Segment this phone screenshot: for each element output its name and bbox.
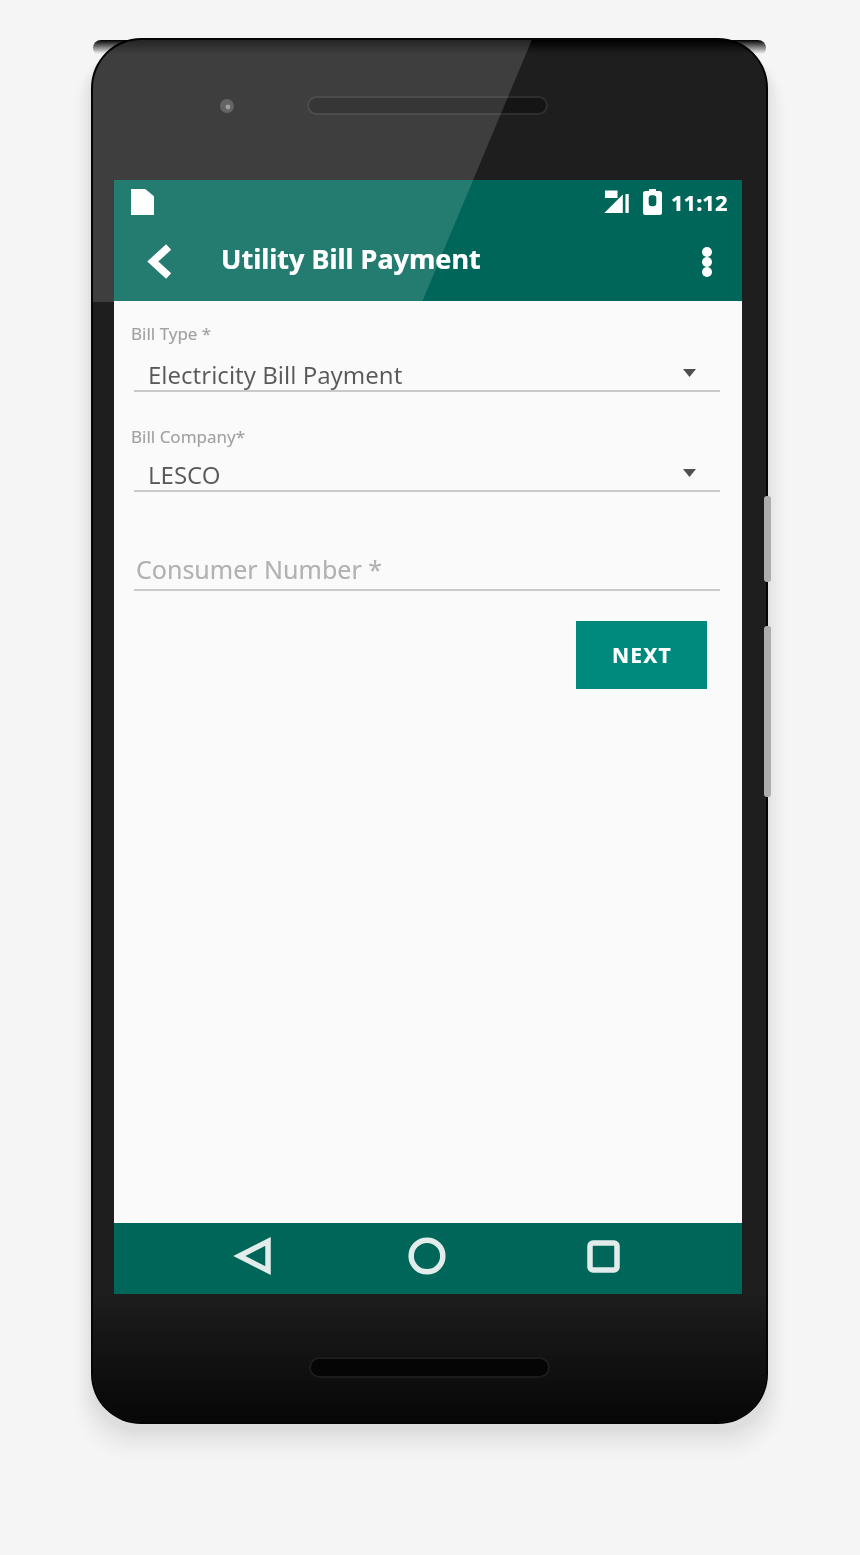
staticText: NEXT [612,641,672,670]
button[interactable]: NEXT [576,621,707,689]
staticText: 11:12 [671,187,728,217]
staticText: Electricity Bill Payment [148,358,403,391]
staticText: LESCO [148,458,221,491]
staticText: Bill Company* [131,425,246,448]
button[interactable]: Recent apps [573,1223,633,1283]
button[interactable]: More options [679,235,735,291]
button[interactable]: Home [397,1223,457,1283]
button[interactable]: Back [223,1223,283,1283]
button[interactable]: Bill Company [134,458,720,492]
staticText: Bill Type * [131,322,212,345]
staticText: Consumer Number * [136,552,383,586]
button[interactable]: Back [129,232,191,294]
staticText: Utility Bill Payment [221,240,481,277]
button[interactable]: Consumer Number [134,552,720,591]
button[interactable]: Bill Type [134,358,720,392]
